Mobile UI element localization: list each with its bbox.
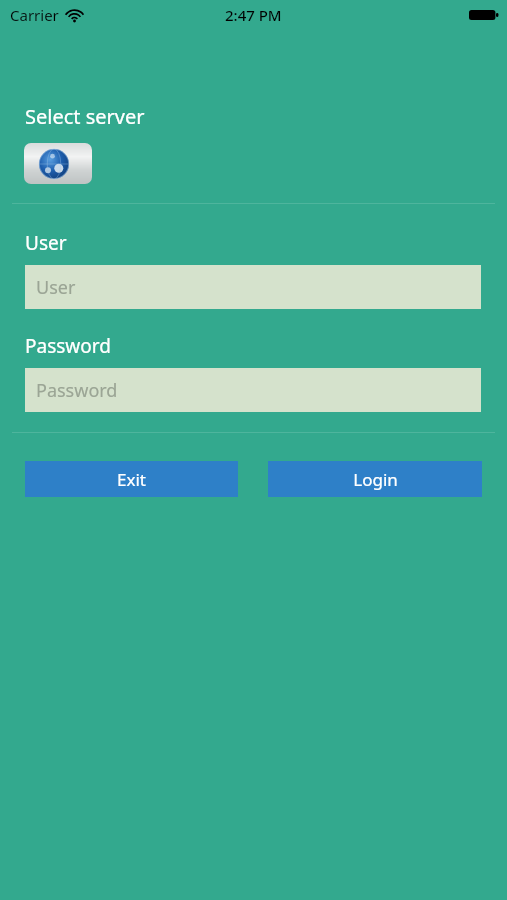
staticText: Select server <box>25 103 145 130</box>
button[interactable]: Password <box>25 368 481 412</box>
button[interactable]: Select server <box>24 143 92 184</box>
staticText: Password <box>25 333 111 359</box>
staticText: 2:47 PM <box>225 5 282 25</box>
staticText: Exit <box>117 468 146 491</box>
button[interactable]: Exit <box>25 461 238 497</box>
staticText: User <box>25 230 67 256</box>
staticText: User <box>36 275 76 300</box>
staticText: Password <box>36 378 118 403</box>
button[interactable]: User <box>25 265 481 309</box>
button[interactable]: Login <box>268 461 482 497</box>
staticText: Carrier <box>10 5 59 25</box>
staticText: Login <box>353 468 398 491</box>
